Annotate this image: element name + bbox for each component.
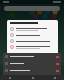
button[interactable]	[3, 53, 61, 60]
button[interactable]	[3, 60, 61, 67]
button[interactable]: Home	[31, 76, 34, 79]
button[interactable]: Search	[4, 6, 60, 11]
button[interactable]: Back	[8, 76, 11, 79]
button[interactable]	[44, 52, 55, 55]
button[interactable]	[10, 27, 55, 31]
button[interactable]	[10, 39, 55, 43]
button[interactable]	[10, 33, 55, 37]
button[interactable]	[3, 67, 61, 74]
button[interactable]: Recents	[53, 76, 56, 79]
button[interactable]	[10, 45, 55, 49]
